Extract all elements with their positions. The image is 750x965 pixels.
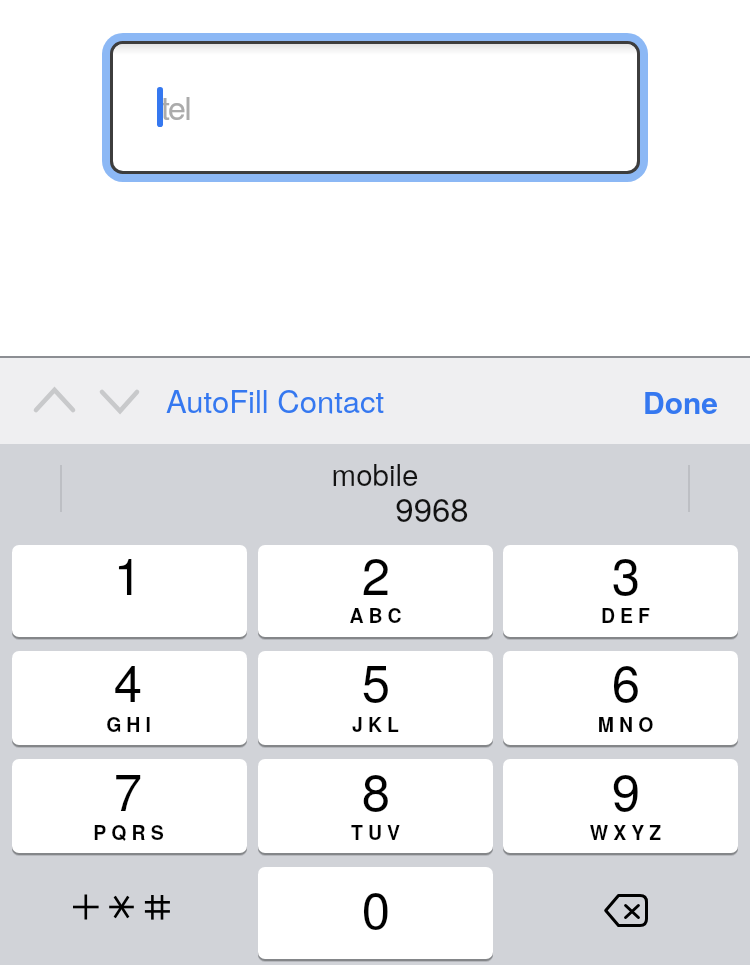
button[interactable] [258,545,493,640]
staticText: 6 [376,643,750,716]
button[interactable] [258,867,493,962]
staticText: 1 [0,536,378,609]
button[interactable] [258,759,493,856]
button[interactable] [503,759,738,856]
staticText: 9968 [182,484,682,531]
staticText: AutoFill Contact [166,377,385,421]
staticText: JKL [128,710,628,738]
button[interactable]: Next field [80,372,161,428]
staticText: 9 [376,752,750,825]
button[interactable] [258,651,493,748]
staticText: 4 [0,643,378,716]
button[interactable] [632,376,732,424]
staticText: TUV [128,818,628,846]
button[interactable] [12,651,247,748]
staticText: 5 [126,643,626,716]
button[interactable] [12,759,247,856]
button[interactable] [503,545,738,640]
staticText: WXYZ [378,818,750,846]
staticText: tel [161,83,191,129]
staticText: MNO [378,710,750,738]
staticText: GHI [0,710,381,738]
button[interactable] [12,867,247,959]
staticText: ABC [128,601,628,629]
staticText: 7 [0,752,378,825]
button[interactable]: Previous field [14,372,95,428]
button[interactable] [12,545,247,640]
button[interactable] [158,376,394,424]
staticText: PQRS [0,818,381,846]
button[interactable]: Delete [503,867,738,959]
button[interactable] [62,446,688,530]
staticText: 2 [126,536,626,609]
button[interactable] [503,651,738,748]
staticText: 3 [376,536,750,609]
button[interactable]: tel [113,44,637,171]
staticText: 0 [126,870,626,943]
staticText: Done [643,380,718,423]
staticText: mobile [125,452,625,494]
staticText: 8 [126,752,626,825]
staticText: DEF [378,601,750,629]
